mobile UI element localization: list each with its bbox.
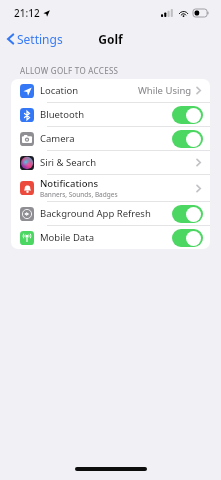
staticText: Notifications	[40, 177, 99, 190]
button[interactable]: Background App Refresh	[11, 202, 210, 225]
button[interactable]: Settings	[0, 28, 69, 50]
button[interactable]: Bluetooth	[11, 103, 210, 126]
staticText: Siri & Search	[40, 156, 97, 169]
staticText: Background App Refresh	[40, 207, 151, 220]
other: More	[196, 184, 201, 193]
button[interactable]: Toggle on	[172, 106, 203, 124]
button[interactable]: Toggle on	[172, 130, 203, 148]
button[interactable]: Location	[11, 79, 210, 102]
staticText: 21:12	[14, 6, 40, 20]
staticText: While Using	[138, 84, 192, 97]
other: More	[196, 86, 201, 95]
staticText: Camera	[40, 132, 75, 145]
staticText: Banners, Sounds, Badges	[40, 190, 118, 199]
staticText: Location	[40, 84, 79, 97]
other: More	[196, 158, 201, 167]
button[interactable]: Notifications	[11, 175, 210, 201]
staticText: ALLOW GOLF TO ACCESS	[20, 65, 119, 76]
button[interactable]: Siri & Search	[11, 151, 210, 174]
button[interactable]: Mobile Data	[11, 226, 210, 249]
staticText: Golf	[98, 31, 123, 47]
button[interactable]: Toggle on	[172, 205, 203, 223]
staticText: Settings	[17, 31, 63, 47]
button[interactable]: Camera	[11, 127, 210, 150]
staticText: Mobile Data	[40, 231, 94, 244]
staticText: Bluetooth	[40, 108, 85, 121]
button[interactable]: Toggle on	[172, 229, 203, 247]
